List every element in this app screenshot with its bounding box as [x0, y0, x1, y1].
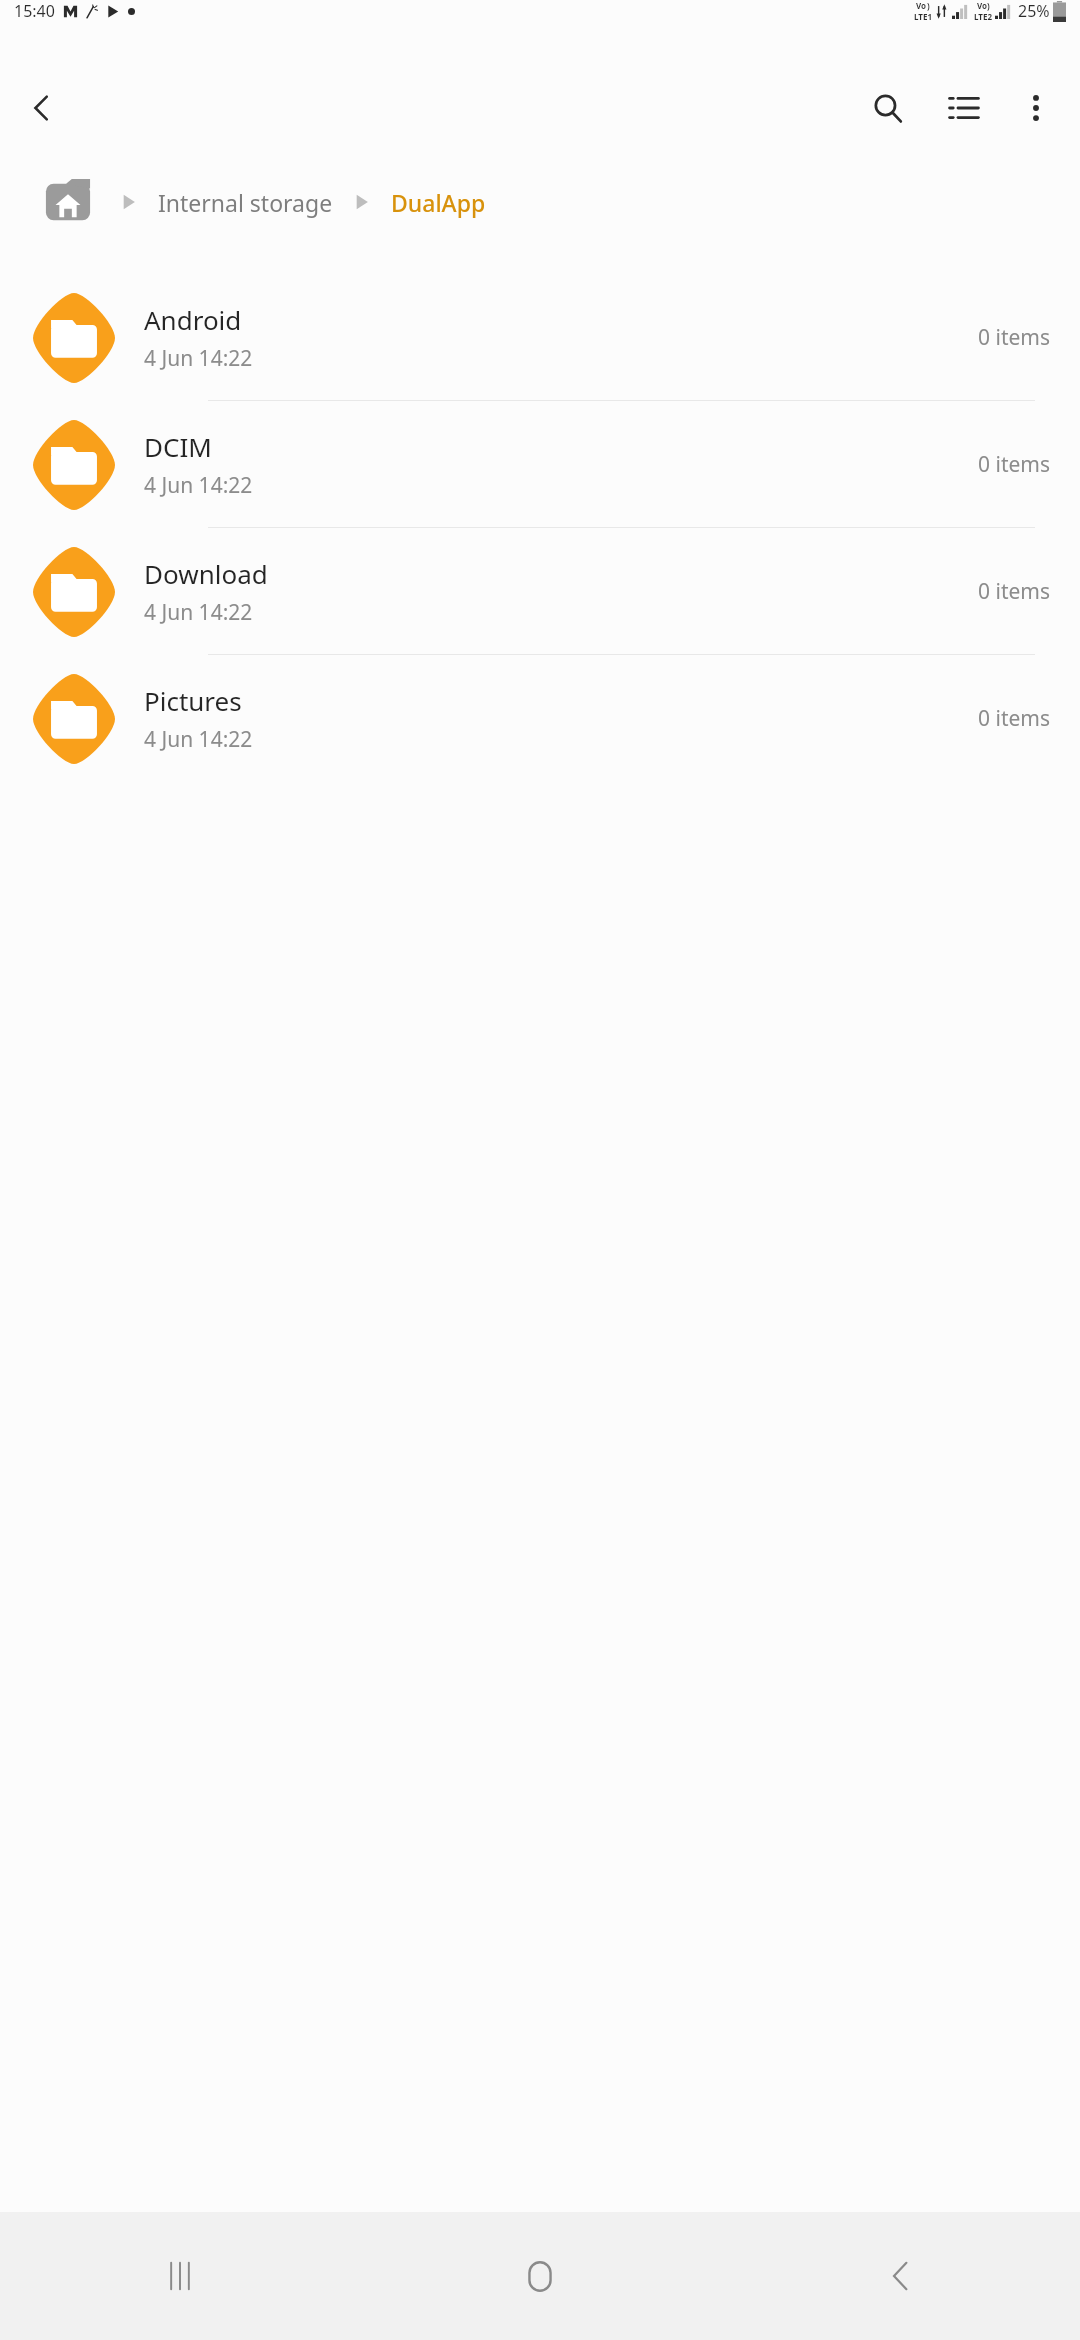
- staticText: 25%: [1018, 0, 1050, 22]
- button[interactable]: Android: [0, 274, 1080, 401]
- staticText: Android: [144, 302, 242, 337]
- button[interactable]: Home: [42, 176, 94, 228]
- staticText: LTE2: [974, 11, 992, 22]
- staticText: 4 Jun 14:22: [144, 344, 253, 373]
- staticText: Internal storage: [158, 187, 333, 218]
- staticText: DualApp: [391, 187, 486, 218]
- staticText: 4 Jun 14:22: [144, 598, 253, 627]
- staticText: Vo): [977, 0, 990, 11]
- staticText: 4 Jun 14:22: [144, 471, 253, 500]
- staticText: 15:40: [14, 0, 55, 22]
- button[interactable]: Search: [854, 74, 922, 142]
- button[interactable]: Back: [8, 74, 76, 142]
- button[interactable]: More options: [1002, 74, 1070, 142]
- staticText: ): [927, 0, 930, 11]
- staticText: 0 items: [977, 323, 1050, 352]
- staticText: 0 items: [977, 450, 1050, 479]
- staticText: 0 items: [977, 704, 1050, 733]
- button[interactable]: Pictures: [0, 655, 1080, 782]
- button[interactable]: Back: [720, 2212, 1080, 2340]
- button[interactable]: DCIM: [0, 401, 1080, 528]
- button[interactable]: Download: [0, 528, 1080, 655]
- staticText: 4 Jun 14:22: [144, 725, 253, 754]
- button[interactable]: Internal storage: [158, 187, 333, 218]
- button[interactable]: Home: [360, 2212, 720, 2340]
- button[interactable]: View as list: [930, 74, 998, 142]
- staticText: Vo: [916, 0, 927, 11]
- button[interactable]: Recent apps: [0, 2212, 360, 2340]
- staticText: Pictures: [144, 683, 242, 718]
- staticText: DCIM: [144, 429, 212, 464]
- button[interactable]: DualApp: [391, 187, 486, 218]
- staticText: 0 items: [977, 577, 1050, 606]
- staticText: Download: [144, 556, 268, 591]
- staticText: LTE1: [914, 11, 932, 22]
